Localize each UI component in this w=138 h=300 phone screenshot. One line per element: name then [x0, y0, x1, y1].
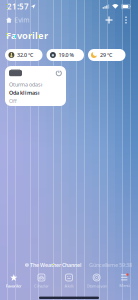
staticText: 32.0 °C	[17, 51, 33, 59]
button[interactable]: 19.0 %	[46, 49, 84, 61]
staticText: Otomasyon	[87, 283, 107, 288]
button[interactable]: More	[120, 13, 132, 27]
button[interactable]: Menü	[110, 271, 138, 291]
button[interactable]: Akıllı	[55, 271, 83, 291]
button[interactable]: Oturma odası	[5, 66, 66, 106]
button[interactable]: Otomasyon	[83, 271, 110, 291]
staticText: Favoriler	[6, 283, 22, 289]
button[interactable]: Evim	[6, 13, 29, 27]
staticText: 29 °C	[100, 51, 112, 59]
staticText: 19.0 %	[58, 51, 74, 59]
button[interactable]: Cihazlar	[28, 271, 55, 291]
staticText: Oda kliması	[9, 89, 40, 96]
staticText: Güncelleme 59:38	[89, 261, 132, 269]
button[interactable]: Add	[103, 13, 115, 27]
staticText: Favoriler	[6, 29, 48, 42]
button[interactable]: 32.0 °C	[5, 49, 42, 61]
staticText: Evim	[14, 16, 29, 24]
button[interactable]: 29 °C	[88, 49, 125, 61]
staticText: 21:57	[7, 1, 29, 12]
staticText: Menü	[119, 283, 129, 288]
staticText: Akıllı	[64, 283, 73, 288]
staticText: Cihazlar	[34, 283, 49, 288]
staticText: Off	[9, 97, 17, 105]
staticText: The Weather Channel	[30, 261, 82, 269]
button[interactable]: Favoriler	[0, 271, 28, 291]
staticText: Oturma odası	[9, 81, 42, 88]
